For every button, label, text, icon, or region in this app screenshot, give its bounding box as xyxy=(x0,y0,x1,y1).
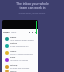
staticText: Cycle 14 starts tomorrow xyxy=(10,53,33,56)
staticText: The inbox your whole team can work in xyxy=(16,2,49,9)
staticText: GitHub xyxy=(10,64,18,67)
button[interactable]: Linear xyxy=(2,49,38,56)
staticText: PR #482 was merged xyxy=(10,67,30,70)
staticText: Notion xyxy=(10,42,18,45)
staticText: Vercel xyxy=(10,70,17,72)
button[interactable]: Figma xyxy=(2,35,38,42)
button[interactable]: GitHub xyxy=(2,63,38,70)
staticText: Slack xyxy=(10,56,16,59)
button[interactable]: Slack xyxy=(2,56,38,63)
staticText: Linear xyxy=(10,50,17,53)
staticText: Your weekly design digest xyxy=(10,39,34,42)
staticText: Inbox xyxy=(3,31,10,34)
staticText: Figma xyxy=(10,36,17,39)
button[interactable]: Notion xyxy=(2,42,38,49)
staticText: Shared email, made simple. xyxy=(18,12,46,15)
staticText: 3 new comments on Roadmap xyxy=(10,45,37,49)
staticText: Today xyxy=(11,31,17,34)
button[interactable]: Vercel xyxy=(2,70,38,72)
staticText: You have 12 unread messages xyxy=(10,59,37,63)
